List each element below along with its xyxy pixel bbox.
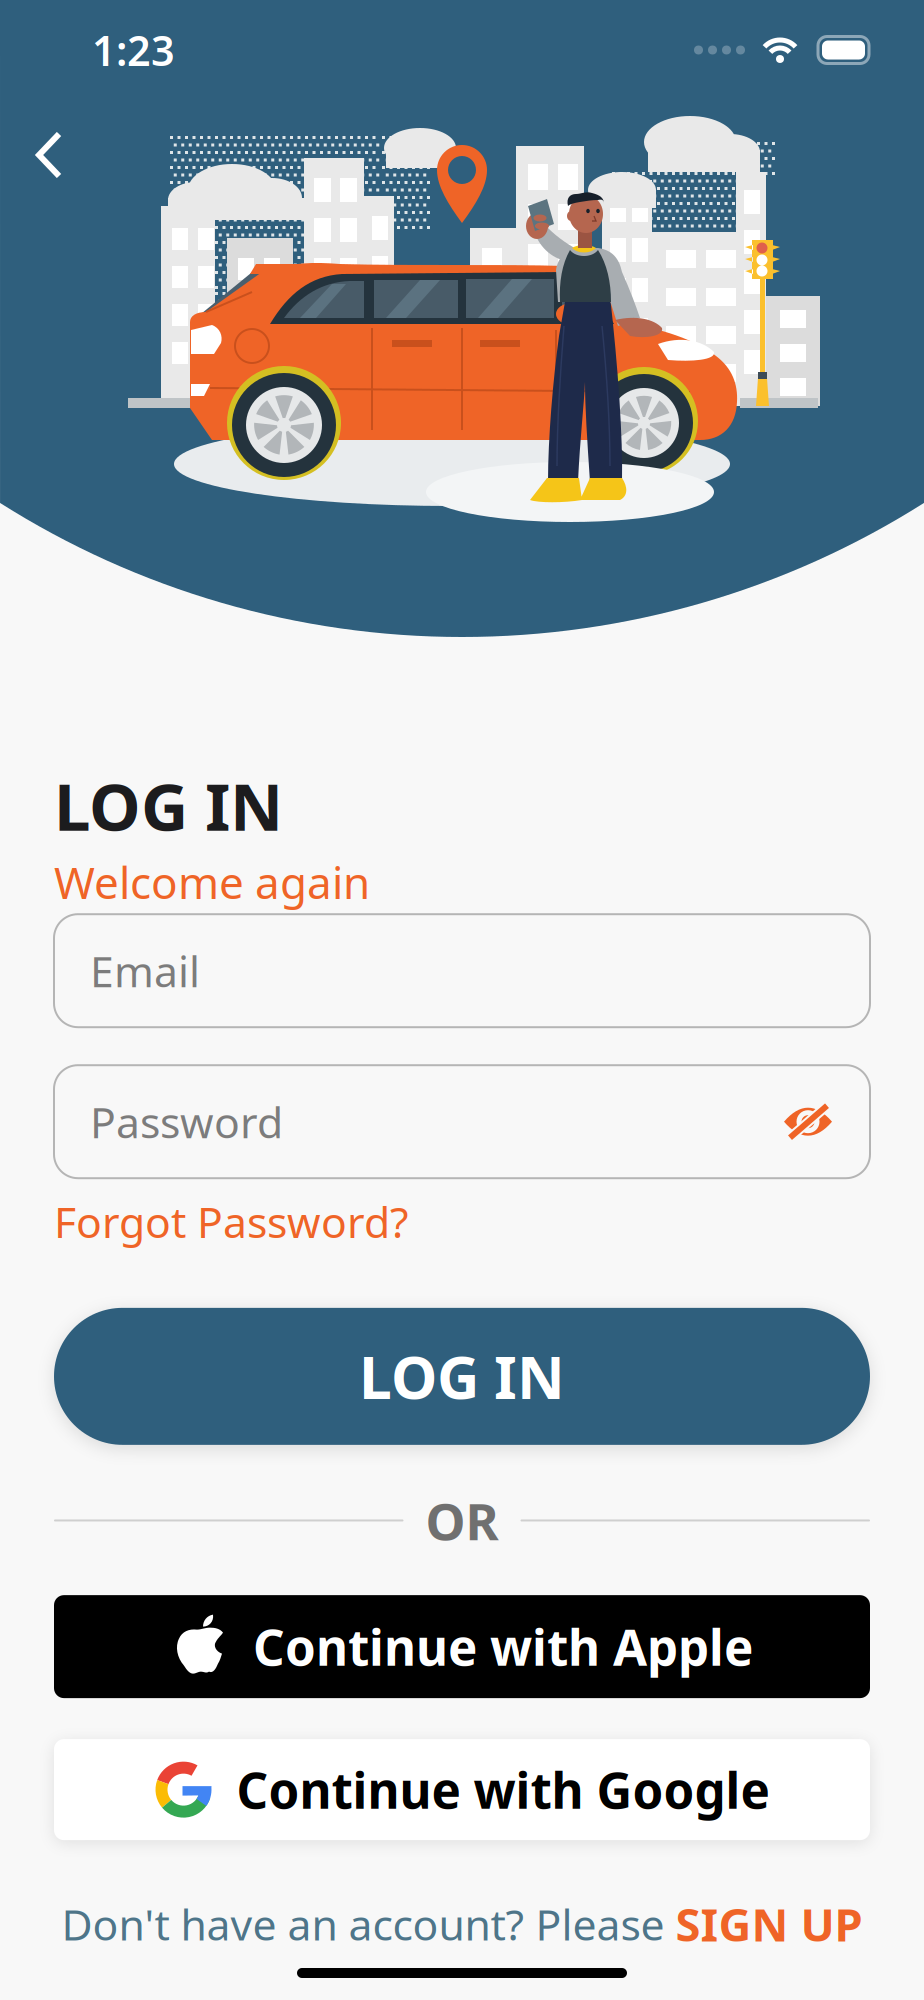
staticText: LOG IN (359, 1337, 565, 1415)
staticText: OR (425, 1487, 498, 1554)
button[interactable]: Continue with Apple (54, 1595, 870, 1698)
staticText: 1:23 (92, 23, 175, 77)
button[interactable]: Show password (782, 1101, 834, 1143)
button[interactable]: Forgot Password? (54, 1187, 409, 1256)
staticText: Email (90, 942, 200, 999)
button[interactable]: Back (0, 100, 89, 194)
button[interactable]: SIGN UP (675, 1894, 862, 1954)
staticText: Welcome again (54, 853, 370, 911)
staticText: Continue with Apple (253, 1614, 753, 1679)
staticText: Forgot Password? (54, 1193, 409, 1250)
button[interactable]: LOG IN (54, 1308, 870, 1445)
staticText: LOG IN (54, 762, 283, 849)
staticText: Don't have an account? Please (61, 1896, 675, 1952)
staticText: Password (90, 1093, 283, 1150)
staticText: SIGN UP (675, 1894, 862, 1954)
button[interactable]: Continue with Google (54, 1739, 870, 1840)
staticText: Continue with Google (236, 1757, 769, 1822)
